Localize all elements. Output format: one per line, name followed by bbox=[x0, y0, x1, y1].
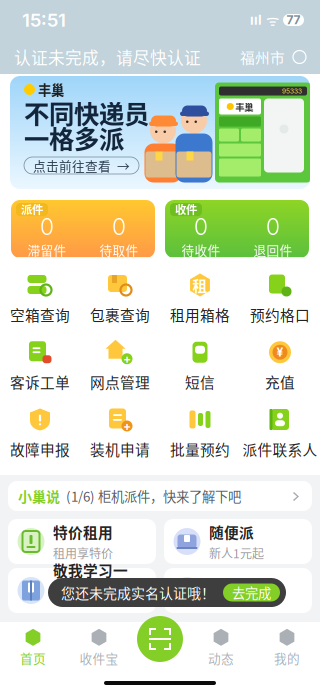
staticText: 租用享特价 bbox=[53, 544, 113, 562]
button[interactable]: + bbox=[80, 339, 160, 392]
button[interactable]: 客诉工单 bbox=[0, 339, 80, 392]
staticText: 一格多派 bbox=[24, 119, 124, 156]
button[interactable]: 空箱查询 bbox=[0, 272, 80, 325]
staticText: 租 bbox=[192, 274, 207, 296]
button[interactable]: 小巢说 bbox=[8, 481, 312, 511]
button[interactable]: 0 bbox=[11, 200, 155, 258]
button[interactable]: 派件联系人 bbox=[240, 406, 320, 460]
staticText: 不同快递员 bbox=[24, 94, 149, 131]
button[interactable]: 预约格口 bbox=[240, 272, 320, 325]
staticText: ııl bbox=[250, 12, 262, 28]
staticText: 0 bbox=[112, 213, 126, 240]
staticText: 收件宝 bbox=[79, 649, 118, 667]
button[interactable]: 95333 bbox=[0, 74, 320, 189]
staticText: 批量预约 bbox=[170, 438, 230, 460]
staticText: (1/6) 柜机派件，快来了解下吧 bbox=[66, 486, 241, 506]
staticText: 认证未完成，请尽快认证 bbox=[14, 45, 201, 69]
staticText: 待取件 bbox=[99, 240, 138, 259]
staticText: 特价租用 bbox=[53, 521, 113, 542]
staticText: 新人1元起 bbox=[209, 544, 264, 562]
staticText: 待收件 bbox=[181, 240, 220, 259]
staticText: 充值 bbox=[265, 371, 295, 392]
staticText: 空箱查询 bbox=[10, 304, 70, 325]
button[interactable]: 随便派 bbox=[164, 519, 312, 564]
staticText: 首页 bbox=[20, 649, 46, 667]
staticText: 敬我学习一下 bbox=[53, 560, 128, 602]
button[interactable]: 租 bbox=[160, 272, 240, 325]
staticText: 95333 bbox=[282, 87, 302, 95]
button[interactable]: + bbox=[80, 406, 160, 460]
staticText: ¥ bbox=[276, 345, 283, 359]
button[interactable]: 批量预约 bbox=[160, 406, 240, 460]
staticText: 您还未完成实名认证哦！ bbox=[61, 582, 215, 603]
button[interactable]: 短信 bbox=[160, 339, 240, 392]
staticText: 15:51 bbox=[22, 9, 66, 31]
staticText: 福州市 bbox=[240, 46, 285, 68]
button[interactable]: 收件宝 bbox=[66, 629, 132, 667]
staticText: 短信 bbox=[185, 371, 215, 392]
staticText: 77 bbox=[286, 13, 300, 27]
staticText: 包裹查询 bbox=[90, 304, 150, 325]
staticText: 派件联系人 bbox=[242, 438, 317, 460]
button[interactable]: 扫一扫 bbox=[137, 616, 183, 662]
staticText: 小巢说 bbox=[18, 486, 60, 506]
staticText: 退回件 bbox=[253, 240, 292, 259]
staticText: 0 bbox=[40, 213, 54, 240]
button[interactable] bbox=[164, 568, 312, 613]
staticText: 故障申报 bbox=[10, 438, 70, 460]
button[interactable]: 故障申报 bbox=[0, 406, 80, 460]
button[interactable]: 0 bbox=[165, 200, 309, 258]
button[interactable]: 特价租用 bbox=[8, 519, 156, 564]
staticText: 滞留件 bbox=[27, 240, 66, 259]
staticText: 装机申请 bbox=[90, 438, 150, 460]
staticText: 租用箱格 bbox=[170, 304, 230, 325]
staticText: 收件 bbox=[175, 201, 197, 217]
staticText: 丰巢 bbox=[38, 80, 64, 99]
staticText: 预约格口 bbox=[250, 304, 310, 325]
staticText: 派件 bbox=[21, 201, 43, 217]
staticText: 我的 bbox=[274, 649, 300, 667]
button[interactable]: 敬我学习一下 bbox=[8, 568, 156, 613]
staticText: + bbox=[123, 419, 131, 433]
button[interactable]: 首页 bbox=[0, 629, 66, 667]
staticText: 去完成 bbox=[232, 583, 271, 602]
button[interactable]: 去完成 bbox=[223, 583, 280, 601]
button[interactable]: 动态 bbox=[188, 629, 254, 667]
staticText: 动态 bbox=[208, 649, 234, 667]
staticText: 点击前往查看 → bbox=[33, 156, 130, 175]
staticText: + bbox=[123, 351, 131, 366]
button[interactable]: 我的 bbox=[254, 629, 320, 667]
staticText: 客诉工单 bbox=[10, 371, 70, 392]
staticText: 随便派 bbox=[209, 521, 254, 542]
staticText: ᯤ bbox=[262, 10, 283, 30]
staticText: 0 bbox=[194, 213, 208, 240]
staticText: 丰巢 bbox=[235, 100, 253, 113]
staticText: 网点管理 bbox=[90, 371, 150, 392]
staticText: 0 bbox=[266, 213, 280, 240]
button[interactable]: ¥ bbox=[240, 339, 320, 392]
button[interactable]: 包裹查询 bbox=[80, 272, 160, 325]
